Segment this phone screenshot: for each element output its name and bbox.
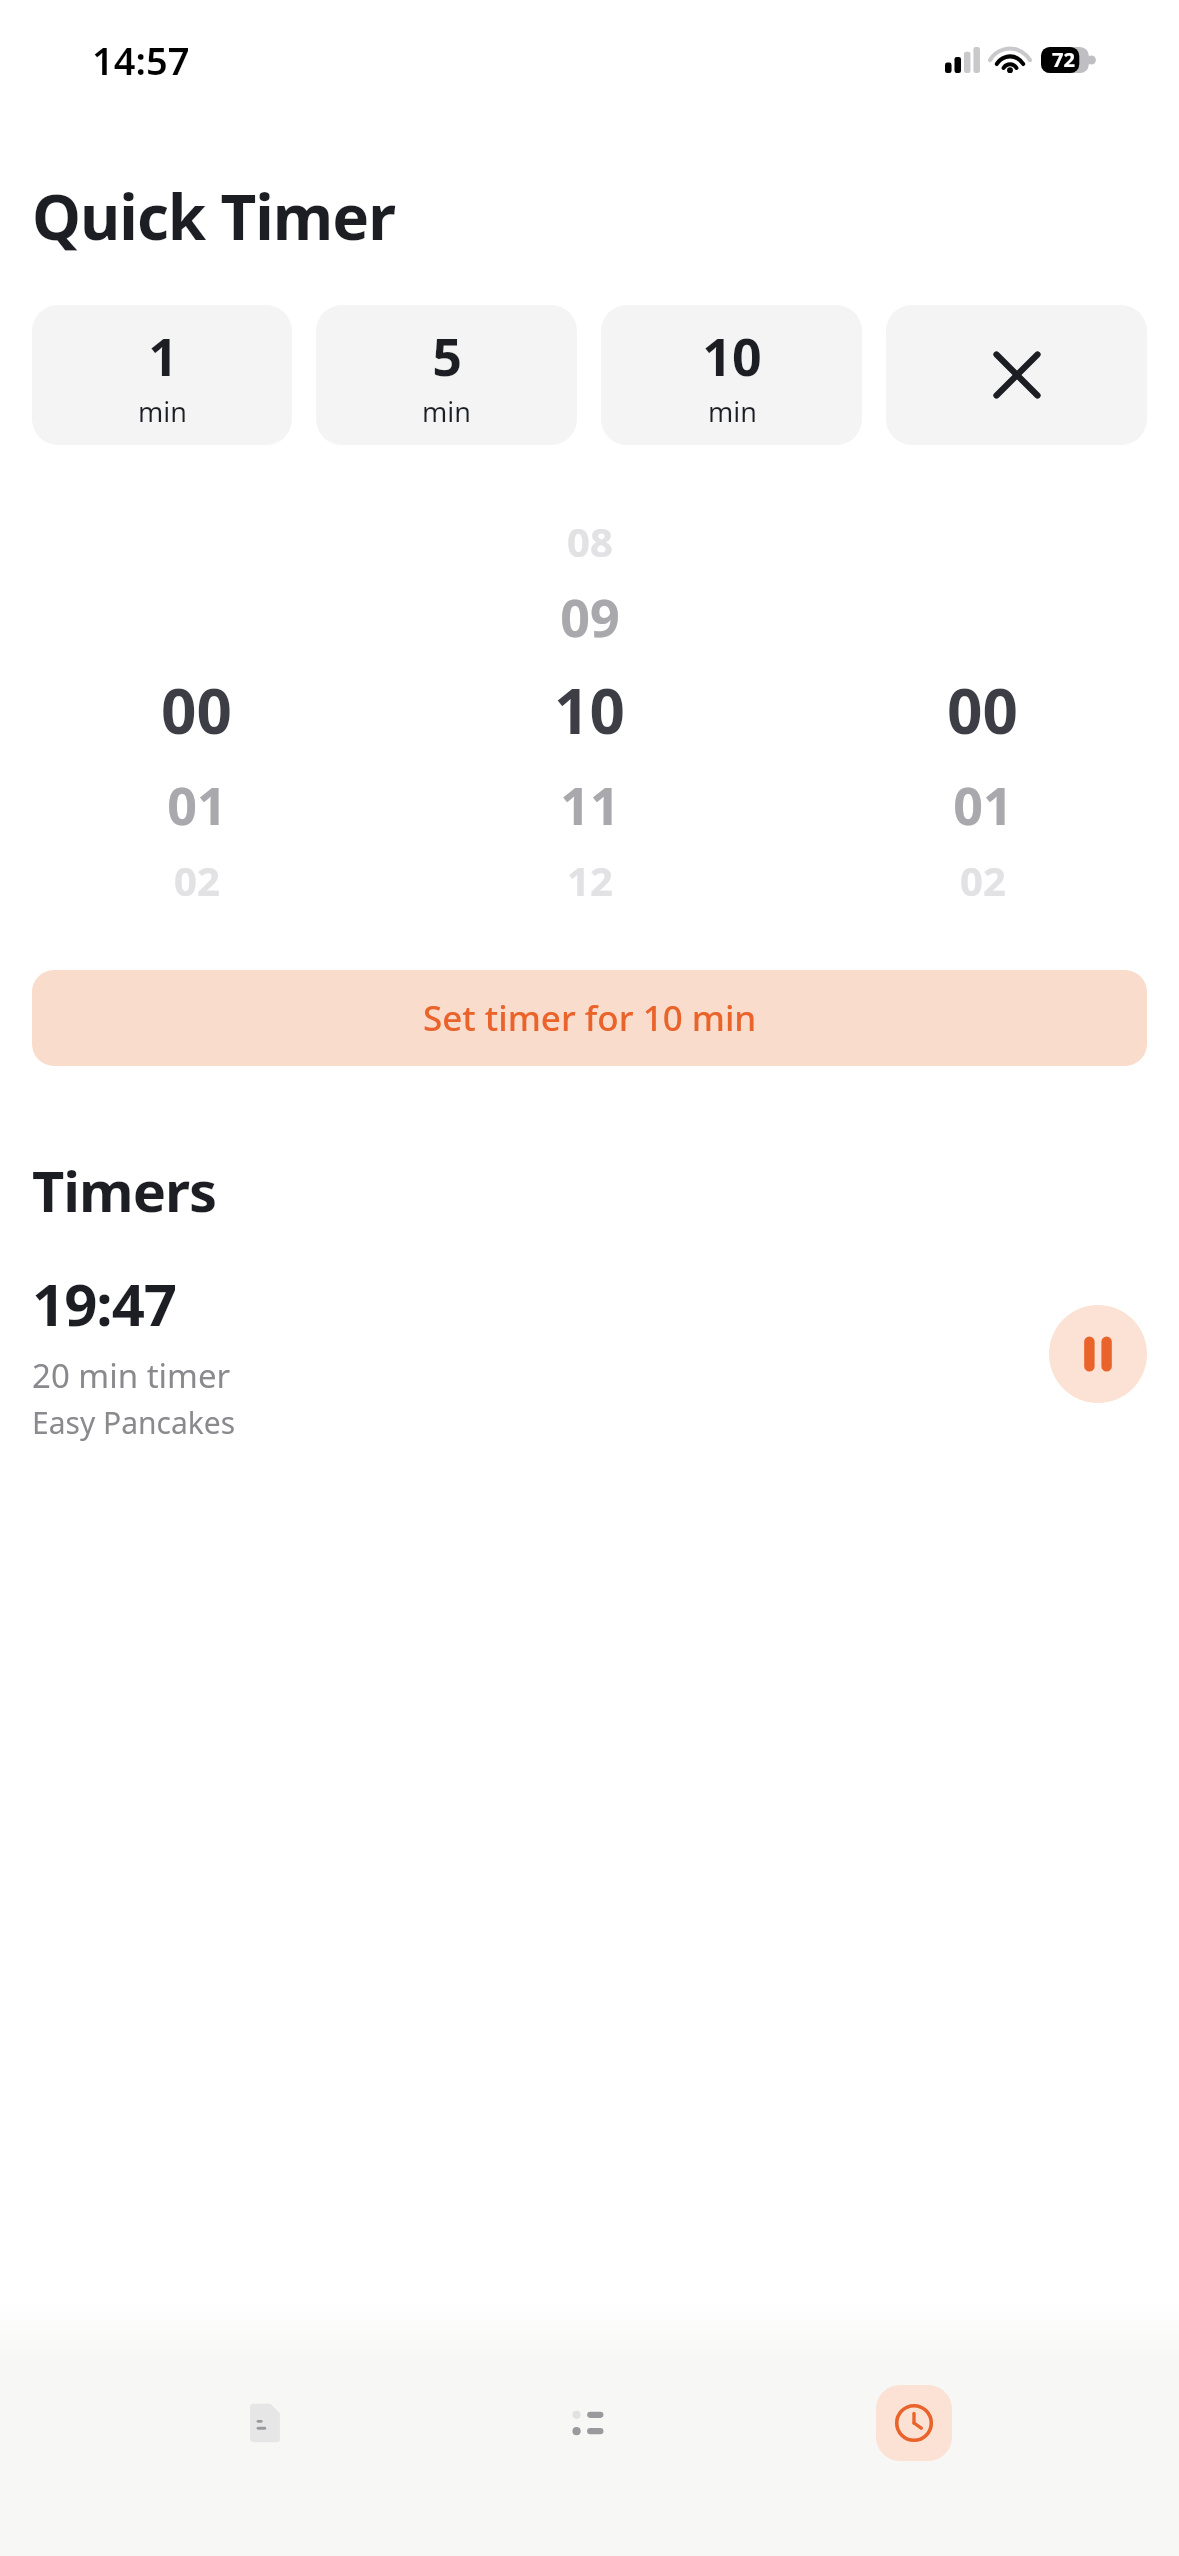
button[interactable]: 10: [601, 305, 862, 445]
staticText: 00: [161, 668, 232, 752]
button[interactable]: Clear timer: [886, 305, 1147, 445]
staticText: min: [708, 393, 757, 430]
staticText: 10: [554, 668, 625, 752]
staticText: 00: [947, 668, 1018, 752]
staticText: 1: [148, 320, 178, 391]
staticText: Set timer for 10 min: [423, 994, 757, 1042]
button[interactable]: 19:47: [32, 1264, 1147, 1443]
staticText: 08: [567, 514, 613, 568]
staticText: min: [422, 393, 471, 430]
staticText: 02: [174, 853, 220, 907]
staticText: 5: [432, 320, 462, 391]
staticText: Quick Timer: [32, 174, 395, 258]
staticText: min: [138, 393, 187, 430]
button[interactable]: Set timer for 10 min: [32, 970, 1147, 1066]
button[interactable]: Pause timer: [1049, 1305, 1147, 1403]
staticText: 10: [702, 320, 762, 391]
staticText: Timers: [32, 1152, 217, 1228]
staticText: 19:47: [32, 1264, 177, 1343]
staticText: 01: [953, 769, 1013, 840]
button[interactable]: 00: [786, 510, 1179, 922]
staticText: 14:57: [92, 34, 190, 86]
staticText: 11: [560, 769, 620, 840]
button[interactable]: Shopping list: [530, 2380, 650, 2466]
button[interactable]: 1: [32, 305, 292, 445]
button[interactable]: 00: [0, 510, 393, 922]
staticText: 02: [960, 853, 1006, 907]
staticText: 72: [1052, 46, 1075, 73]
staticText: 20 min timer: [32, 1353, 231, 1398]
staticText: Easy Pancakes: [32, 1402, 236, 1443]
button[interactable]: 5: [316, 305, 577, 445]
staticText: 01: [167, 769, 227, 840]
staticText: 12: [567, 853, 613, 907]
staticText: 09: [560, 581, 620, 652]
button[interactable]: 08: [393, 510, 786, 922]
button[interactable]: Recipes: [205, 2380, 325, 2466]
button[interactable]: Timers: [854, 2380, 974, 2466]
